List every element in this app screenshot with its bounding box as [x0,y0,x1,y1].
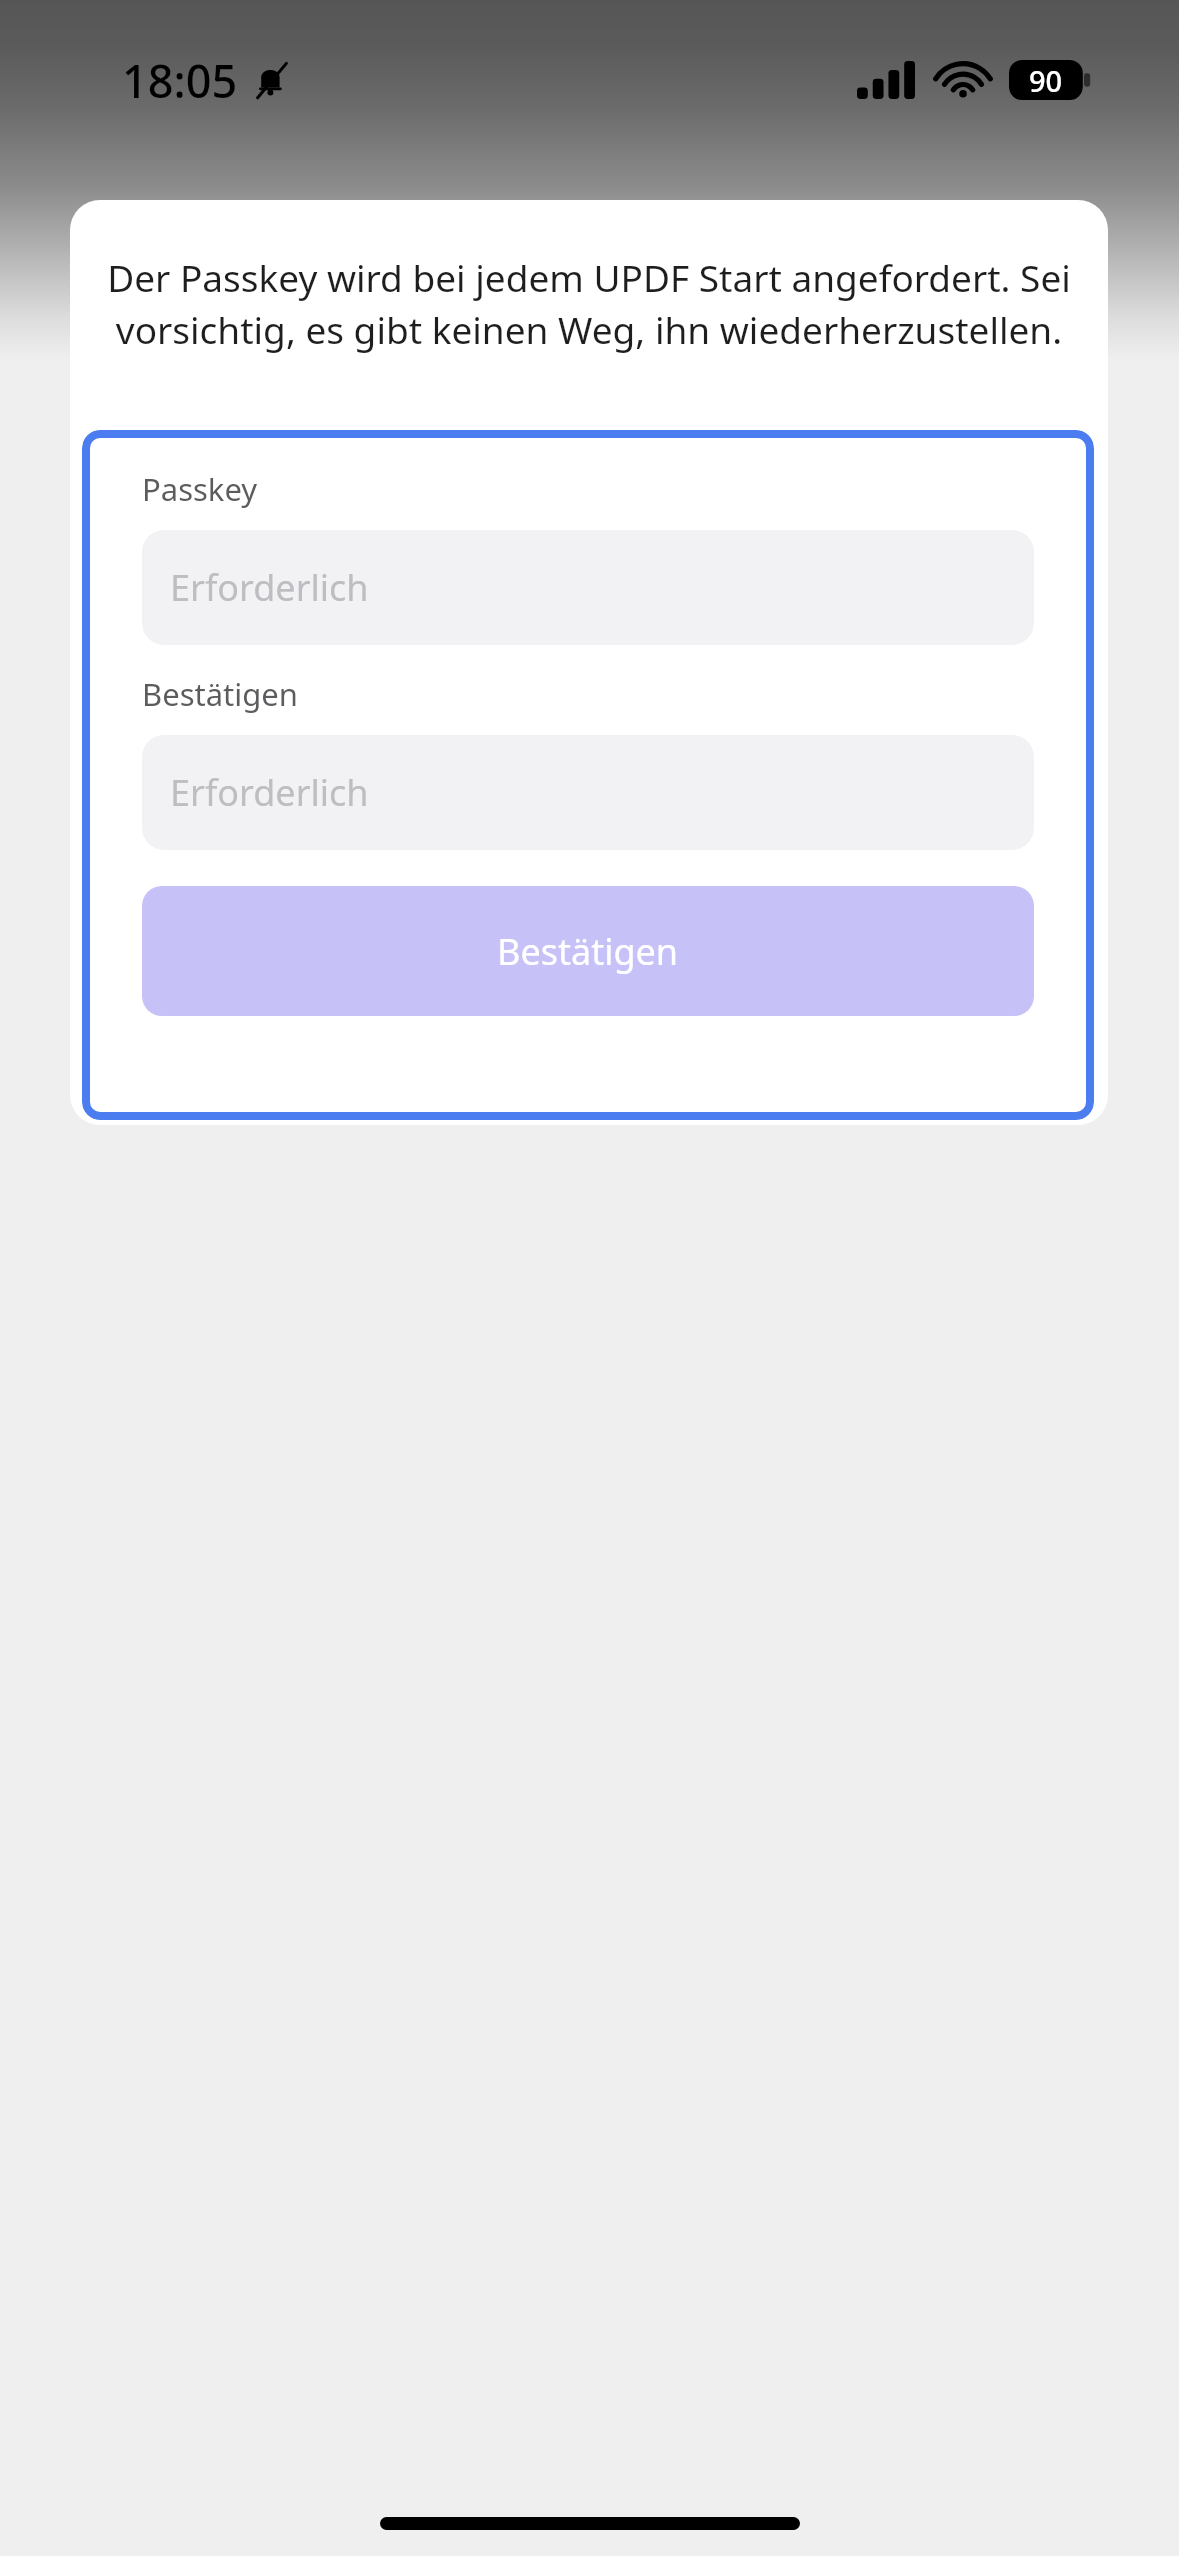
staticText: 90 [1029,61,1063,100]
staticText: Bestätigen [142,673,298,715]
staticText: Passkey [142,468,258,510]
other: Wi-Fi [937,61,989,99]
staticText: Bestätigen [497,927,679,976]
staticText: Der Passkey wird bei jedem UPDF Start an… [92,252,1086,355]
button[interactable]: Erforderlich [142,735,1034,850]
other: Silent mode [252,61,292,101]
staticText: 18:05 [122,50,238,111]
button[interactable]: Bestätigen [142,886,1034,1016]
other: Cellular signal [857,61,915,99]
other: Battery 90 percent [1009,60,1091,100]
button[interactable]: Erforderlich [142,530,1034,645]
staticText: Erforderlich [170,768,369,817]
staticText: Erforderlich [170,563,369,612]
